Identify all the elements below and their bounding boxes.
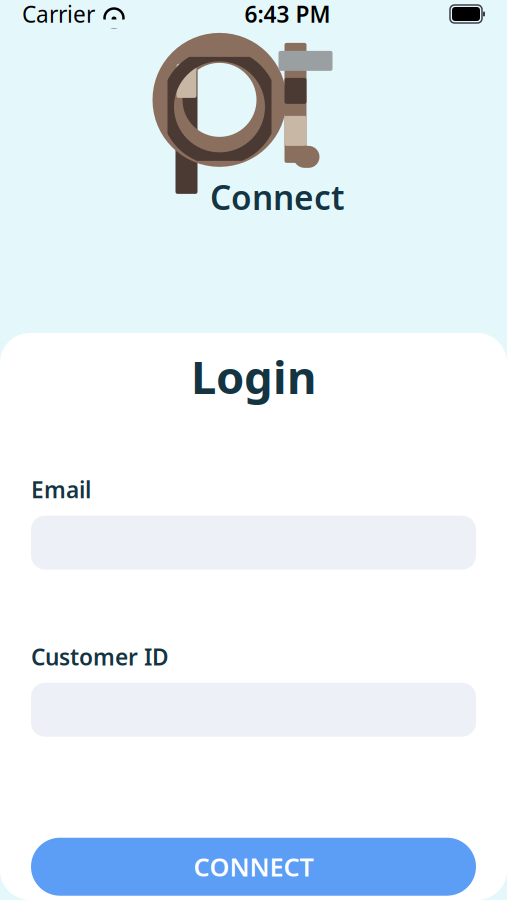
- button[interactable]: CONNECT: [31, 838, 476, 896]
- staticText: Carrier: [22, 0, 95, 29]
- staticText: Email: [31, 474, 91, 505]
- staticText: 6:43 PM: [244, 0, 330, 29]
- staticText: Login: [191, 346, 316, 406]
- staticText: Connect: [210, 175, 345, 219]
- staticText: CONNECT: [193, 850, 313, 883]
- staticText: Customer ID: [31, 642, 169, 672]
